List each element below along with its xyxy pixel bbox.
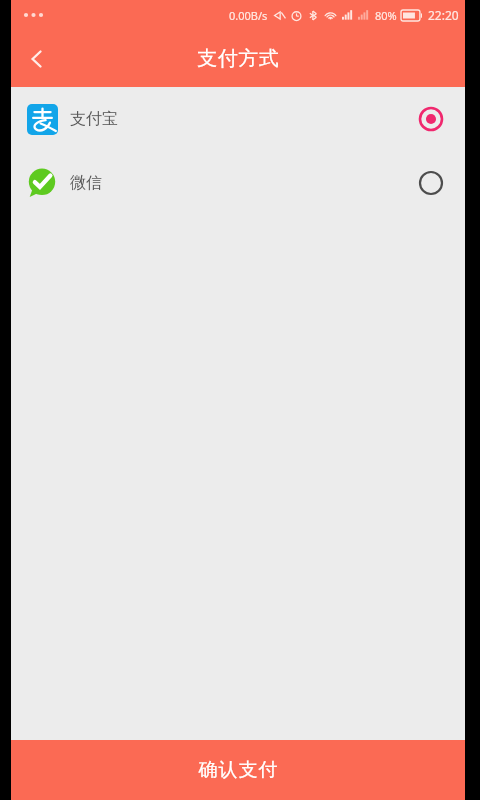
button[interactable]: 支付宝 (11, 87, 465, 151)
button[interactable]: Back (11, 33, 63, 85)
staticText: 确认支付 (198, 758, 278, 782)
button[interactable]: 微信 (11, 151, 465, 215)
staticText: 支付方式 (197, 46, 279, 71)
staticText: 微信 (70, 173, 102, 193)
button[interactable]: 确认支付 (11, 740, 465, 800)
staticText: 支付宝 (70, 109, 118, 129)
staticText: 0.00B/s (229, 8, 268, 23)
staticText: 22:20 (428, 7, 459, 23)
staticText: 80% (375, 8, 397, 23)
